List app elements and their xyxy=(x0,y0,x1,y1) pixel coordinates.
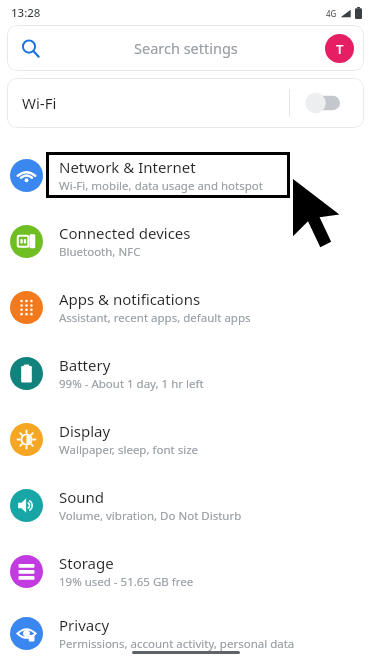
other: Search xyxy=(21,39,40,58)
button[interactable]: Privacy xyxy=(0,604,371,662)
staticText: Battery xyxy=(59,355,111,375)
button[interactable]: Sound xyxy=(0,472,371,538)
button[interactable]: Storage xyxy=(0,538,371,604)
staticText: Wi-Fi xyxy=(22,93,57,113)
staticText: T xyxy=(336,40,344,58)
staticText: 13:28 xyxy=(11,5,41,21)
button[interactable]: Display xyxy=(0,406,371,472)
staticText: Wallpaper, sleep, font size xyxy=(59,442,199,458)
button[interactable]: Apps & notifications xyxy=(0,274,371,340)
button[interactable]: Search xyxy=(7,25,364,71)
staticText: Display xyxy=(59,421,111,441)
staticText: Wi-Fi, mobile, data usage and hotspot xyxy=(59,178,263,194)
button[interactable]: Battery xyxy=(0,340,371,406)
button[interactable]: Wi-Fi toggle xyxy=(300,87,350,119)
staticText: 19% used - 51.65 GB free xyxy=(59,574,194,590)
staticText: Privacy xyxy=(59,615,110,635)
staticText: Volume, vibration, Do Not Disturb xyxy=(59,508,242,524)
staticText: Storage xyxy=(59,553,114,573)
staticText: Apps & notifications xyxy=(59,289,201,309)
staticText: Sound xyxy=(59,487,105,507)
staticText: 99% - About 1 day, 1 hr left xyxy=(59,376,204,392)
staticText: Bluetooth, NFC xyxy=(59,244,141,260)
staticText: 4G xyxy=(326,8,337,19)
staticText: Connected devices xyxy=(59,223,191,243)
button[interactable]: Network & Internet xyxy=(0,142,371,208)
staticText: Permissions, account activity, personal … xyxy=(59,636,295,652)
staticText: Search settings xyxy=(134,38,238,58)
button[interactable]: Account xyxy=(325,34,354,63)
button[interactable]: Wi-Fi xyxy=(7,78,364,128)
button[interactable]: Connected devices xyxy=(0,208,371,274)
staticText: Network & Internet xyxy=(59,157,196,177)
staticText: Assistant, recent apps, default apps xyxy=(59,310,251,326)
